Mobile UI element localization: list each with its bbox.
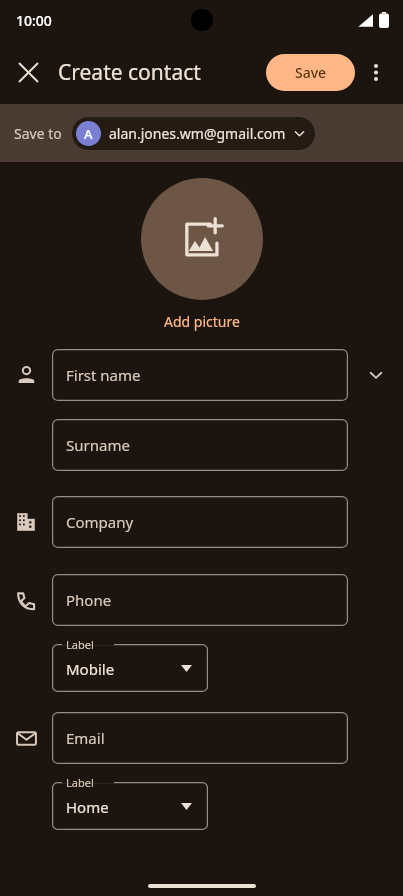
staticText: Create contact — [58, 58, 201, 87]
button[interactable]: Save — [266, 54, 355, 91]
staticText: Surname — [66, 435, 130, 455]
staticText: Save to — [14, 124, 62, 143]
staticText: Email — [66, 728, 105, 748]
staticText: Label — [66, 775, 94, 790]
button[interactable]: Company — [52, 496, 348, 548]
button[interactable]: Expand name fields — [348, 349, 403, 401]
button[interactable]: Close — [6, 50, 50, 94]
button[interactable]: Email — [52, 712, 348, 764]
staticText: alan.jones.wm@gmail.com — [109, 124, 286, 143]
staticText: Home — [66, 797, 109, 817]
button[interactable]: Label — [52, 637, 208, 692]
button[interactable]: Phone — [52, 574, 348, 626]
staticText: Company — [66, 512, 134, 532]
staticText: 10:00 — [16, 11, 52, 30]
staticText: Phone — [66, 590, 112, 610]
staticText: Save — [295, 63, 327, 82]
staticText: Add picture — [164, 312, 240, 331]
staticText: Mobile — [66, 659, 115, 679]
button[interactable]: More options — [355, 51, 397, 93]
staticText: First name — [66, 365, 141, 385]
button[interactable]: First name — [52, 349, 348, 401]
staticText: A — [84, 125, 93, 143]
button[interactable]: Add picture — [141, 178, 263, 300]
button[interactable]: A — [72, 117, 315, 150]
button[interactable]: Surname — [52, 419, 348, 471]
button[interactable]: Label — [52, 775, 208, 830]
staticText: Label — [66, 637, 94, 652]
